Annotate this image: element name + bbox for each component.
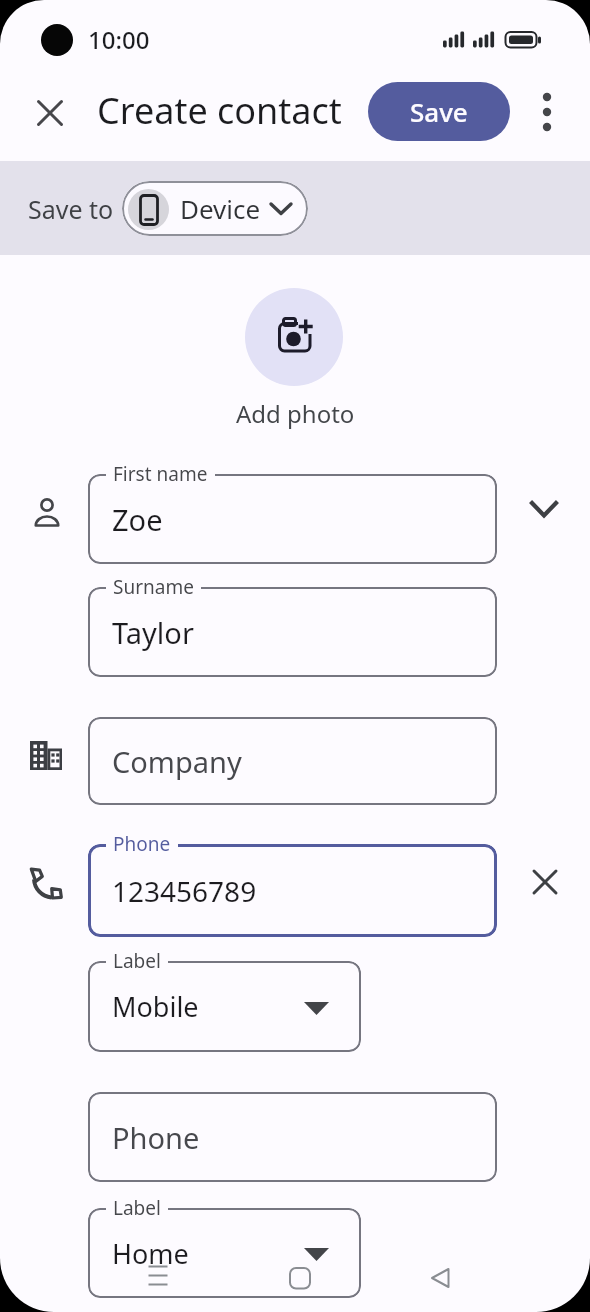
staticText: Taylor bbox=[112, 613, 194, 652]
button[interactable] bbox=[245, 288, 343, 386]
button[interactable] bbox=[37, 100, 63, 126]
button[interactable] bbox=[540, 90, 554, 134]
staticText: Save bbox=[410, 94, 468, 129]
staticText: Phone bbox=[112, 1118, 200, 1157]
button[interactable] bbox=[530, 501, 558, 519]
button[interactable]: Company bbox=[88, 717, 497, 805]
button[interactable] bbox=[148, 1265, 168, 1286]
staticText: First name bbox=[113, 461, 208, 487]
button[interactable]: Taylor bbox=[88, 587, 497, 677]
staticText: Mobile bbox=[112, 988, 199, 1025]
button[interactable]: Phone bbox=[88, 1092, 497, 1182]
button[interactable] bbox=[429, 1267, 451, 1289]
button[interactable]: Mobile bbox=[88, 961, 361, 1052]
button[interactable]: Save bbox=[368, 82, 510, 141]
staticText: Device bbox=[180, 191, 261, 226]
button[interactable]: Home bbox=[88, 1208, 361, 1298]
staticText: 123456789 bbox=[112, 872, 257, 910]
staticText: Phone bbox=[113, 831, 171, 857]
staticText: Label bbox=[113, 1195, 161, 1221]
staticText: Label bbox=[113, 948, 161, 974]
button[interactable]: Device bbox=[122, 181, 308, 236]
button[interactable] bbox=[289, 1267, 311, 1289]
staticText: Home bbox=[112, 1235, 189, 1272]
staticText: Surname bbox=[113, 574, 194, 600]
staticText: Zoe bbox=[112, 500, 163, 539]
staticText: 10:00 bbox=[88, 23, 150, 56]
button[interactable]: 123456789 bbox=[88, 844, 497, 937]
button[interactable]: Zoe bbox=[88, 474, 497, 564]
button[interactable] bbox=[532, 869, 558, 895]
staticText: Create contact bbox=[97, 86, 342, 135]
staticText: Save to bbox=[28, 192, 114, 226]
staticText: Add photo bbox=[236, 397, 355, 430]
staticText: Company bbox=[112, 742, 242, 781]
